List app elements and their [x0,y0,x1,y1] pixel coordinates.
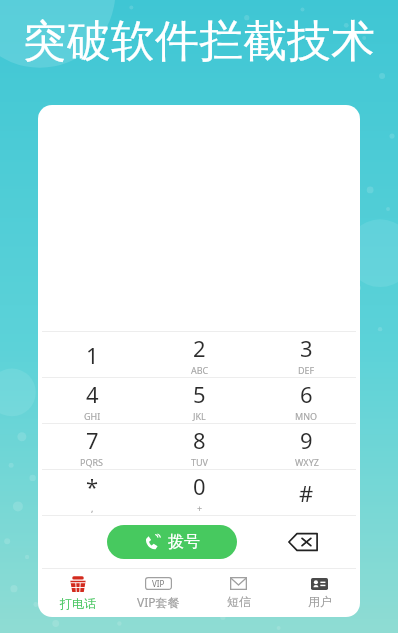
staticText: DEF [298,364,315,376]
staticText: 8 [193,425,206,455]
staticText: PQRS [80,456,104,468]
staticText: 4 [86,379,99,409]
button[interactable]: 7 [38,424,146,469]
staticText: 拨号 [168,532,200,552]
staticText: VIP [152,578,165,589]
button[interactable]: 3 [253,332,360,377]
button[interactable]: 0 [146,470,253,515]
staticText: 9 [300,425,313,455]
button[interactable]: 5 [146,378,253,423]
staticText: MNO [295,410,318,422]
staticText: 短信 [227,594,251,609]
button[interactable]: VIP [118,569,198,617]
staticText: 突破软件拦截技术 [23,14,375,69]
staticText: 5 [193,379,206,409]
button[interactable]: 2 [146,332,253,377]
staticText: VIP套餐 [137,594,180,610]
staticText: 7 [86,425,99,455]
button[interactable]: 打电话 [38,569,118,617]
button[interactable]: 9 [253,424,360,469]
button[interactable]: 1 [38,332,146,377]
staticText: 1 [86,340,99,370]
staticText: 0 [193,471,206,501]
staticText: JKL [193,410,206,422]
staticText: WXYZ [295,456,319,468]
button[interactable]: 8 [146,424,253,469]
staticText: TUV [191,456,208,468]
staticText: 用户 [308,594,332,609]
staticText: 2 [193,333,206,363]
button[interactable]: Backspace [280,519,326,565]
button[interactable]: * [38,470,146,515]
staticText: # [299,478,314,508]
staticText: ABC [191,364,209,376]
button[interactable]: 4 [38,378,146,423]
button[interactable]: 拨号 [107,525,237,559]
button[interactable]: 短信 [198,569,279,617]
staticText: 6 [300,379,313,409]
staticText: * [86,471,99,501]
staticText: 打电话 [60,596,96,611]
button[interactable]: 6 [253,378,360,423]
staticText: , [91,502,94,514]
staticText: 3 [300,333,313,363]
button[interactable]: # [253,470,360,515]
staticText: + [197,502,203,514]
staticText: GHI [84,410,101,422]
button[interactable]: 用户 [279,569,360,617]
